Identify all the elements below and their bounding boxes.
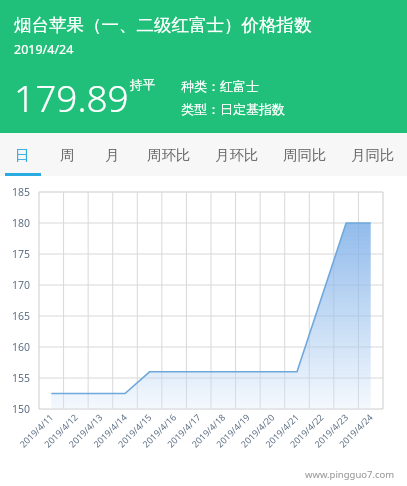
staticText: 2019/4/24: [14, 41, 74, 58]
staticText: 月环比: [215, 146, 259, 164]
button[interactable]: 周环比: [135, 133, 203, 176]
button[interactable]: 月同比: [339, 133, 407, 176]
staticText: 日: [15, 146, 30, 164]
staticText: 周: [60, 146, 75, 164]
button[interactable]: 月: [90, 133, 135, 176]
staticText: 烟台苹果（一、二级红富士）价格指数: [14, 14, 312, 36]
button[interactable]: 周同比: [271, 133, 339, 176]
staticText: 月同比: [351, 146, 395, 164]
staticText: 种类：红富士: [181, 78, 259, 94]
staticText: 179.89: [14, 72, 129, 122]
button[interactable]: 日: [0, 133, 45, 176]
staticText: 月: [105, 146, 120, 164]
staticText: www.pingguo7.com: [305, 468, 395, 481]
staticText: 周同比: [283, 146, 327, 164]
button[interactable]: 周: [45, 133, 90, 176]
staticText: 类型：日定基指数: [181, 101, 285, 117]
button[interactable]: 月环比: [203, 133, 271, 176]
staticText: 周环比: [147, 146, 191, 164]
staticText: 持平: [130, 77, 155, 93]
